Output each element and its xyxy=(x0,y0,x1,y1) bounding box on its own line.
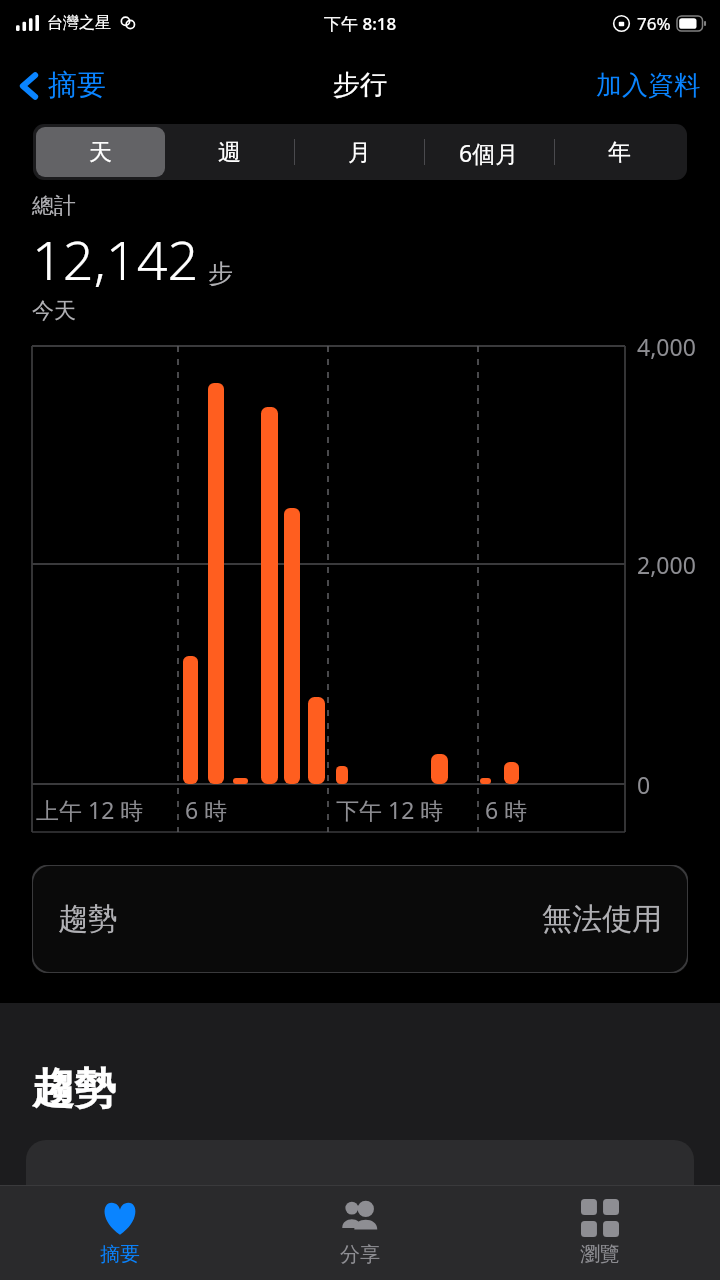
staticText: 摘要 xyxy=(48,67,106,104)
staticText: 台灣之星 xyxy=(47,13,111,33)
staticText: 4,000 xyxy=(637,331,696,362)
staticText: 12,142 xyxy=(32,222,199,296)
button[interactable]: 摘要 xyxy=(0,1185,240,1280)
staticText: 6 時 xyxy=(185,794,228,825)
button[interactable]: Back xyxy=(10,59,114,112)
staticText: 月 xyxy=(348,138,371,167)
staticText: 0 xyxy=(637,769,651,800)
staticText: 週 xyxy=(218,138,241,167)
staticText: 6 時 xyxy=(485,794,528,825)
other: Back xyxy=(18,68,40,104)
button[interactable]: 加入資料 xyxy=(590,61,706,110)
button[interactable]: 月 xyxy=(294,127,424,177)
staticText: 76% xyxy=(637,12,671,35)
staticText: 年 xyxy=(608,138,631,167)
button[interactable]: 趨勢 xyxy=(32,865,688,973)
staticText: 無法使用 xyxy=(542,900,662,938)
staticText: 上午 12 時 xyxy=(36,794,144,825)
button[interactable]: 年 xyxy=(554,127,684,177)
staticText: 步 xyxy=(208,258,233,289)
staticText: 總計 xyxy=(32,192,76,220)
staticText: 2,000 xyxy=(637,549,696,580)
staticText: 瀏覽 xyxy=(580,1242,620,1267)
staticText: 6個月 xyxy=(459,137,519,168)
staticText: 下午 8:18 xyxy=(324,12,397,35)
button[interactable] xyxy=(26,1140,694,1260)
button[interactable]: 6個月 xyxy=(424,127,554,177)
staticText: 分享 xyxy=(340,1242,380,1267)
button[interactable]: 分享 xyxy=(240,1185,480,1280)
staticText: 趨勢 xyxy=(58,900,118,938)
staticText: 今天 xyxy=(32,297,76,325)
button[interactable]: 天 xyxy=(36,127,165,177)
staticText: 趨勢 xyxy=(32,1063,116,1116)
staticText: 加入資料 xyxy=(596,69,700,102)
button[interactable]: 瀏覽 xyxy=(480,1185,720,1280)
staticText: 步行 xyxy=(333,68,387,102)
button[interactable]: 週 xyxy=(165,127,294,177)
staticText: 天 xyxy=(89,138,112,167)
staticText: 下午 12 時 xyxy=(336,794,444,825)
staticText: 摘要 xyxy=(100,1242,140,1267)
